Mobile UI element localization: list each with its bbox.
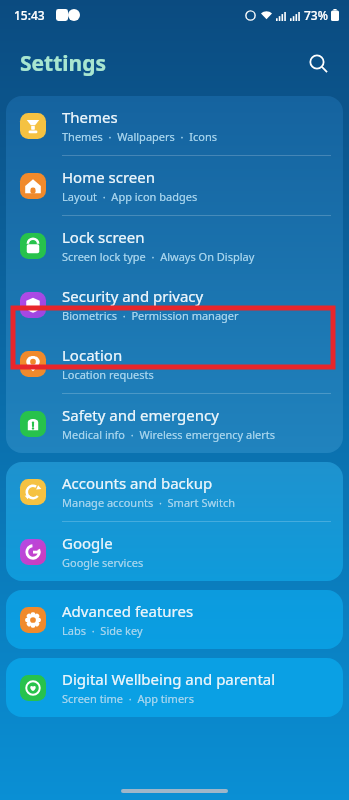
- staticText: Labs · Side key: [62, 623, 143, 638]
- button[interactable]: Lock screen: [6, 216, 343, 275]
- button[interactable]: Search: [301, 46, 335, 80]
- staticText: Themes · Wallpapers · Icons: [62, 129, 217, 144]
- staticText: Location requests: [62, 367, 154, 382]
- button[interactable]: Home screen: [6, 156, 343, 216]
- staticText: Screen lock type · Always On Display: [62, 249, 255, 264]
- staticText: Screen time · App timers: [62, 691, 194, 706]
- staticText: Manage accounts · Smart Switch: [62, 495, 235, 510]
- staticText: Themes: [62, 107, 118, 127]
- staticText: 73%: [304, 7, 328, 23]
- button[interactable]: Security and privacy: [6, 275, 343, 334]
- staticText: Digital Wellbeing and parental controls: [62, 669, 329, 689]
- staticText: Layout · App icon badges: [62, 189, 198, 204]
- staticText: Accounts and backup: [62, 473, 213, 493]
- staticText: Medical info · Wireless emergency alerts: [62, 427, 276, 442]
- staticText: Safety and emergency: [62, 405, 219, 425]
- button[interactable]: Location: [6, 334, 343, 394]
- staticText: Advanced features: [62, 601, 194, 621]
- staticText: Google services: [62, 555, 144, 570]
- staticText: Biometrics · Permission manager: [62, 308, 239, 323]
- button[interactable]: Google: [6, 522, 343, 581]
- staticText: Home screen: [62, 167, 156, 187]
- staticText: Security and privacy: [62, 286, 204, 306]
- button[interactable]: Safety and emergency: [6, 394, 343, 453]
- staticText: Location: [62, 345, 123, 365]
- staticText: 15:43: [14, 7, 45, 23]
- button[interactable]: Advanced features: [6, 590, 343, 649]
- button[interactable]: Digital Wellbeing and parental controls: [6, 658, 343, 717]
- staticText: Settings: [20, 49, 107, 78]
- button[interactable]: Themes: [6, 96, 343, 156]
- staticText: Lock screen: [62, 227, 145, 247]
- button[interactable]: Accounts and backup: [6, 462, 343, 522]
- staticText: Google: [62, 533, 113, 553]
